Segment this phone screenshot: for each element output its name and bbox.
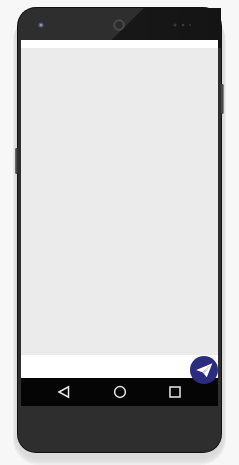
- button[interactable]: Send: [190, 356, 218, 384]
- button[interactable]: Recent apps: [153, 378, 197, 406]
- button[interactable]: Home: [98, 378, 142, 406]
- button[interactable]: Back: [42, 378, 86, 406]
